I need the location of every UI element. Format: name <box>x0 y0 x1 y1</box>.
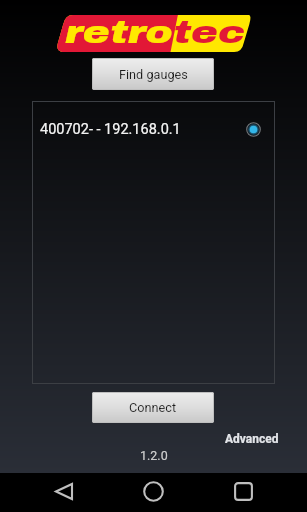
button[interactable]: Connect <box>92 392 214 423</box>
staticText: 400702- - 192.168.0.1 <box>40 121 181 138</box>
staticText: Connect <box>129 400 177 415</box>
button[interactable]: Recent apps <box>220 472 267 511</box>
staticText: retro <box>65 15 173 50</box>
button[interactable]: Back <box>40 472 87 511</box>
staticText: Advanced <box>225 432 279 446</box>
staticText: Find gauges <box>119 67 188 82</box>
button[interactable]: 400702- - 192.168.0.1 <box>32 101 275 157</box>
staticText: tec <box>173 15 245 50</box>
button[interactable]: Advanced <box>223 430 281 448</box>
button[interactable]: Find gauges <box>92 58 214 90</box>
button[interactable]: Home <box>130 472 177 511</box>
staticText: 1.2.0 <box>140 448 168 463</box>
